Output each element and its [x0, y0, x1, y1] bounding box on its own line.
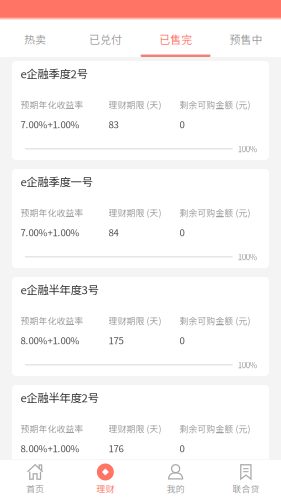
- staticText: 100%: [238, 143, 257, 155]
- staticText: 剩余可购金额 (元): [179, 98, 250, 111]
- staticText: e企融半年度3号: [21, 281, 99, 297]
- staticText: 剩余可购金额 (元): [179, 206, 250, 219]
- staticText: 联合贷: [232, 482, 259, 495]
- staticText: 理财: [96, 482, 114, 495]
- staticText: 理财期限 (天): [108, 314, 161, 327]
- staticText: 预期年化收益率: [21, 422, 84, 435]
- staticText: 7.00%+1.00%: [21, 225, 80, 239]
- button[interactable]: e企融季度2号: [12, 61, 269, 160]
- button[interactable]: e企融半年度2号: [12, 385, 269, 484]
- staticText: 我的: [167, 482, 185, 495]
- button[interactable]: e企融半年度3号: [12, 277, 269, 376]
- button[interactable]: 我的: [140, 460, 211, 500]
- staticText: 100%: [238, 467, 257, 479]
- staticText: 理财期限 (天): [108, 422, 161, 435]
- button[interactable]: 预售中: [211, 20, 281, 57]
- staticText: 7.00%+1.00%: [21, 117, 80, 131]
- staticText: 176: [108, 441, 123, 455]
- staticText: 理财期限 (天): [108, 98, 161, 111]
- button[interactable]: 已售完: [140, 20, 211, 57]
- button[interactable]: 热卖: [0, 20, 70, 57]
- staticText: 84: [108, 225, 118, 239]
- button[interactable]: e企融季度一号: [12, 169, 269, 268]
- staticText: 8.00%+1.00%: [21, 333, 80, 347]
- button[interactable]: 已兑付: [70, 20, 140, 57]
- button[interactable]: 理财: [70, 460, 140, 500]
- staticText: 0: [179, 117, 184, 131]
- staticText: 预期年化收益率: [21, 314, 84, 327]
- button[interactable]: 首页: [0, 460, 70, 500]
- staticText: 已兑付: [89, 31, 122, 47]
- staticText: 预售中: [229, 31, 262, 47]
- staticText: 预期年化收益率: [21, 206, 84, 219]
- staticText: 0: [179, 441, 184, 455]
- staticText: 8.00%+1.00%: [21, 441, 80, 455]
- staticText: 剩余可购金额 (元): [179, 422, 250, 435]
- staticText: 100%: [238, 359, 257, 371]
- staticText: 100%: [238, 251, 257, 263]
- staticText: e企融半年度2号: [21, 389, 99, 405]
- staticText: 热卖: [24, 31, 46, 47]
- staticText: 0: [179, 333, 184, 347]
- staticText: 理财期限 (天): [108, 206, 161, 219]
- staticText: 0: [179, 225, 184, 239]
- staticText: 175: [108, 333, 123, 347]
- staticText: 预期年化收益率: [21, 98, 84, 111]
- staticText: 剩余可购金额 (元): [179, 314, 250, 327]
- staticText: 83: [108, 117, 118, 131]
- button[interactable]: 联合贷: [211, 460, 281, 500]
- staticText: e企融季度2号: [21, 65, 88, 81]
- staticText: 已售完: [159, 31, 192, 47]
- staticText: 首页: [26, 482, 44, 495]
- staticText: e企融季度一号: [21, 173, 93, 189]
